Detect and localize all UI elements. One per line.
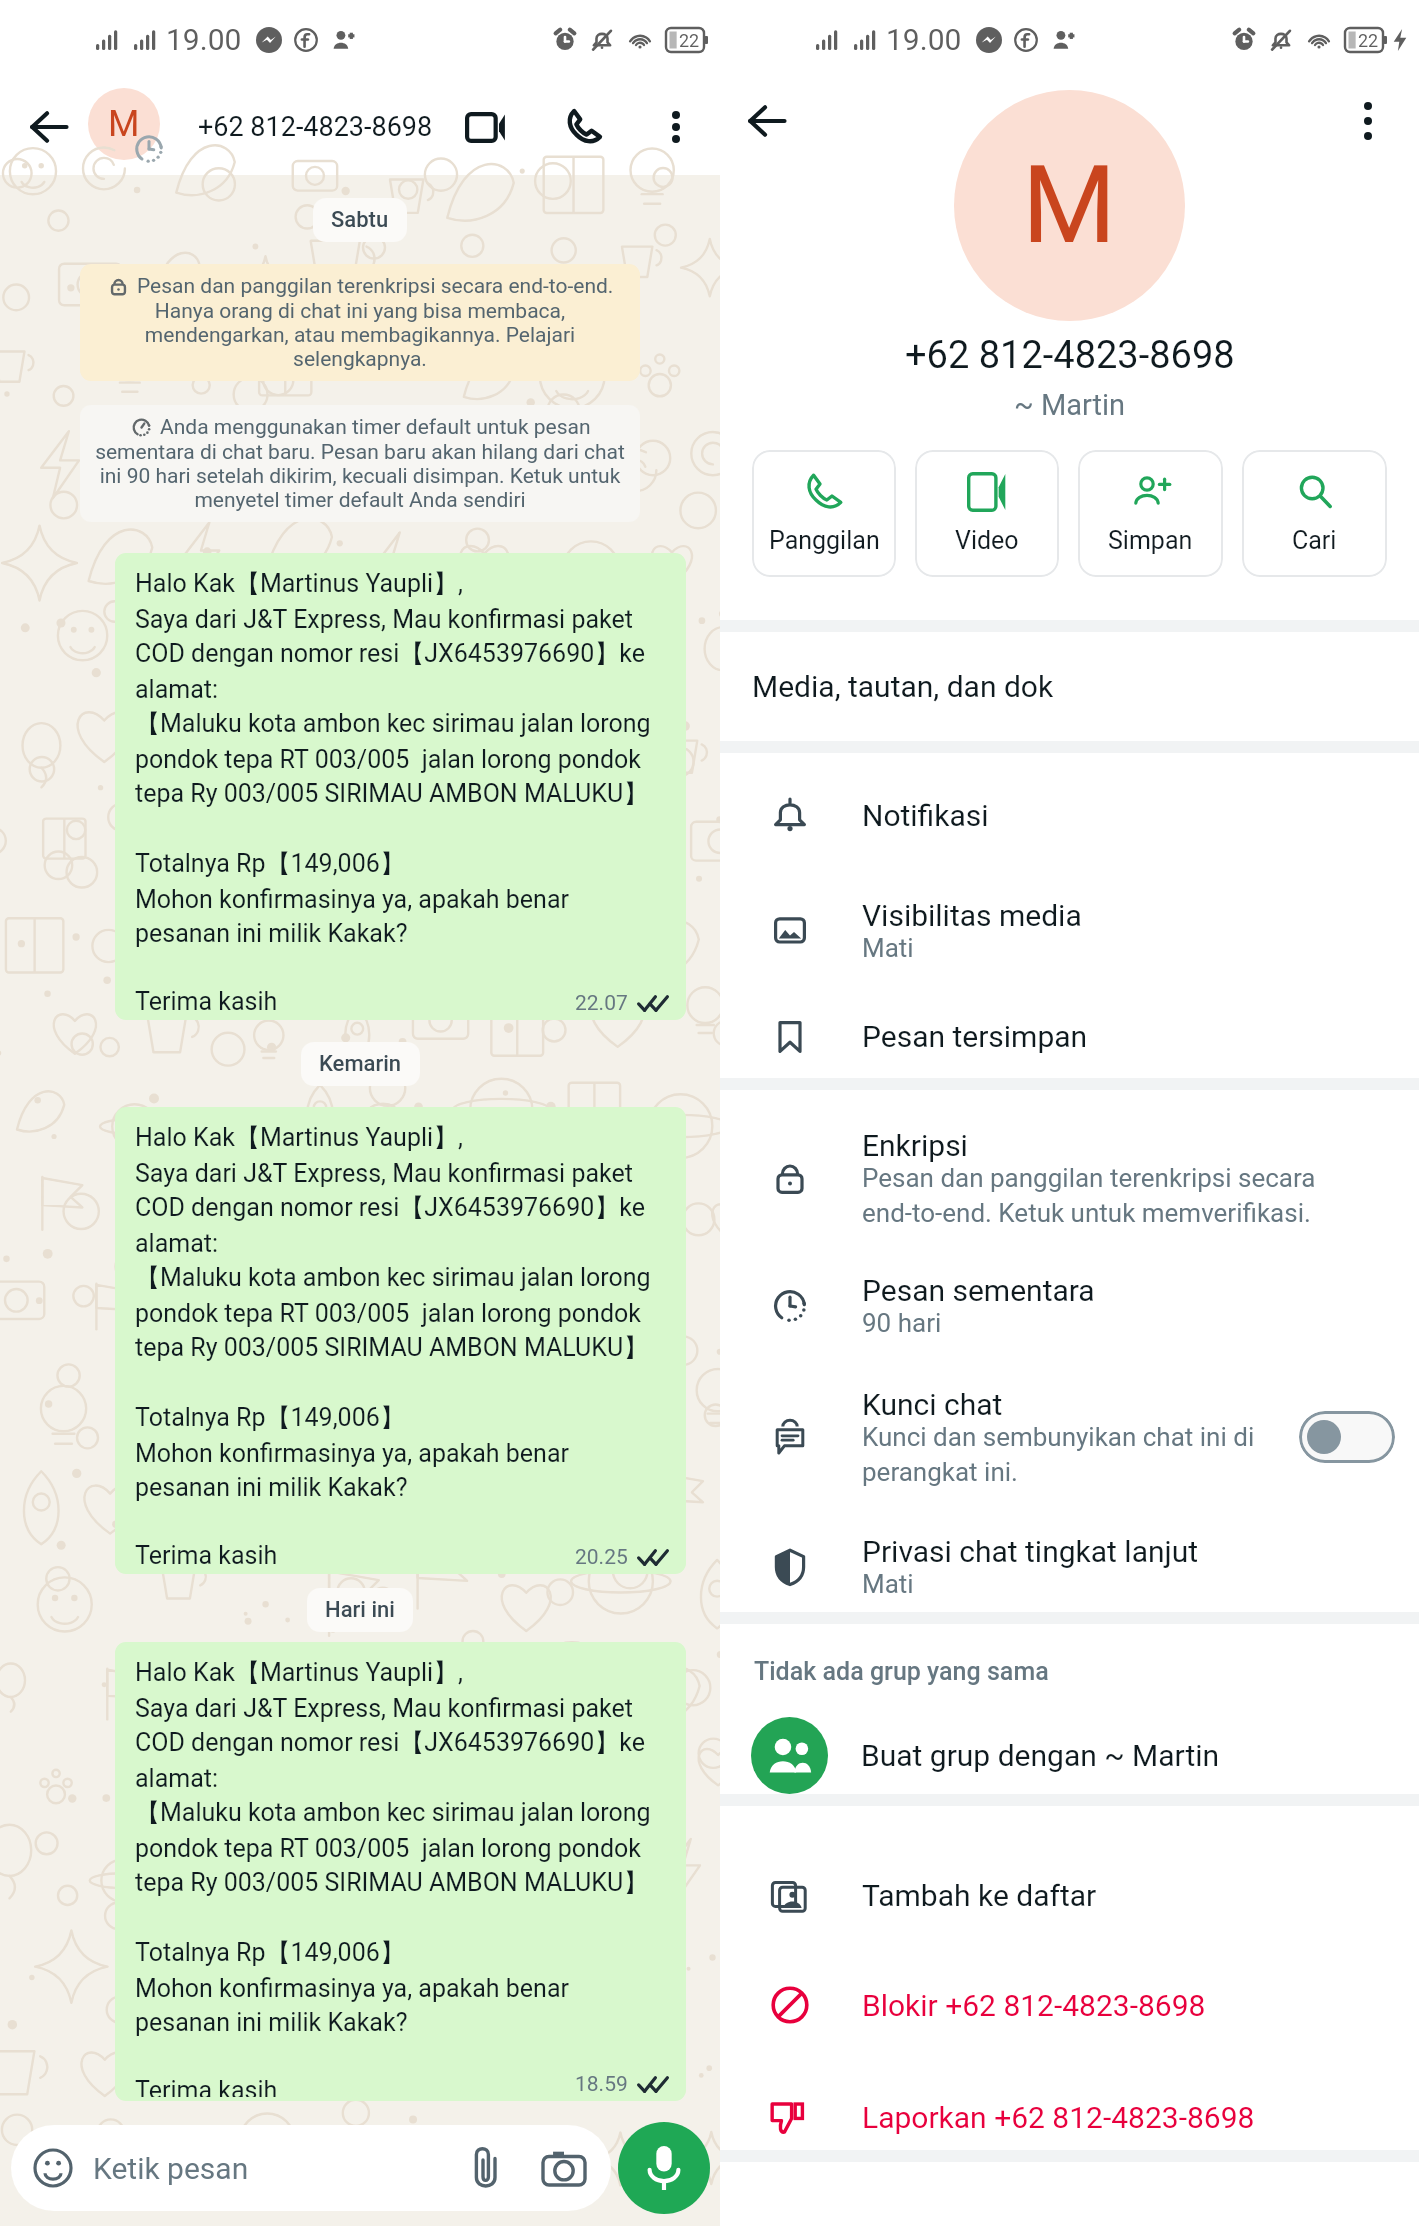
staticText: Blokir +62 812-4823-8698 (862, 1988, 1206, 2023)
button[interactable]: Visibilitas media (720, 865, 1419, 995)
staticText: Ketik pesan (93, 2151, 249, 2186)
staticText: 19.00 (166, 22, 242, 57)
button[interactable]: Record voice message (618, 2122, 710, 2214)
staticText: Anda menggunakan timer default untuk pes… (160, 415, 591, 440)
staticText: +62 812-4823-8698 (905, 333, 1235, 378)
staticText: Pesan dan panggilan terenkripsi secara e… (862, 1163, 1316, 1228)
button[interactable]: Pesan sementara (720, 1236, 1419, 1349)
staticText: ~ Martin (1014, 388, 1126, 422)
button[interactable]: Buat grup dengan ~ Martin (720, 1686, 1419, 1794)
button[interactable]: Anda menggunakan timer default untuk pes… (80, 405, 640, 522)
button[interactable]: More options (1337, 90, 1399, 152)
button[interactable]: Video call (448, 89, 524, 165)
button[interactable]: Pesan tersimpan (720, 995, 1419, 1078)
button[interactable]: Video (915, 450, 1059, 577)
staticText: Pesan sementara (862, 1273, 1095, 1308)
staticText: Pesan dan panggilan terenkripsi secara e… (137, 274, 614, 299)
staticText: Kunci dan sembunyikan chat ini di perang… (862, 1422, 1255, 1487)
staticText: Tambah ke daftar (862, 1878, 1097, 1913)
button[interactable]: Hari ini (307, 1588, 413, 1632)
staticText: M (108, 103, 140, 145)
staticText: Video (955, 526, 1019, 555)
staticText: 19.00 (886, 22, 962, 57)
button[interactable]: Laporkan +62 812-4823-8698 (720, 2025, 1419, 2135)
button[interactable]: Back (18, 96, 80, 158)
button[interactable]: Halo Kak【Martinus Yaupli】, Saya dari J&T… (115, 1107, 686, 1574)
staticText: Enkripsi (862, 1128, 968, 1163)
staticText: M (1022, 142, 1117, 269)
staticText: Media, tautan, dan dok (752, 669, 1054, 704)
staticText: Cari (1292, 526, 1337, 555)
staticText: Privasi chat tingkat lanjut (862, 1534, 1199, 1569)
button[interactable]: Halo Kak【Martinus Yaupli】, Saya dari J&T… (115, 553, 686, 1020)
button[interactable]: Voice call (546, 89, 622, 165)
staticText: Kunci chat (862, 1387, 1003, 1422)
button[interactable]: Cari (1242, 450, 1387, 577)
staticText: Hari ini (325, 1597, 395, 1623)
staticText: 22 (679, 30, 700, 51)
staticText: Tidak ada grup yang sama (754, 1657, 1049, 1686)
staticText: Buat grup dengan ~ Martin (861, 1738, 1220, 1773)
button[interactable]: Back (736, 90, 798, 152)
staticText: +62 812-4823-8698 (198, 111, 433, 143)
button[interactable]: Pesan dan panggilan terenkripsi secara e… (80, 264, 640, 381)
staticText: 22 (1358, 30, 1379, 51)
staticText: sementara di chat baru. Pesan baru akan … (94, 440, 626, 512)
staticText: 90 hari (862, 1308, 942, 1338)
button[interactable]: Blokir +62 812-4823-8698 (720, 1919, 1419, 2025)
button[interactable]: Panggilan (752, 450, 896, 577)
button[interactable]: Halo Kak【Martinus Yaupli】, Saya dari J&T… (115, 1642, 686, 2101)
button[interactable]: Tambah ke daftar (720, 1806, 1419, 1919)
staticText: 18.59 (575, 2072, 628, 2097)
button[interactable]: Privasi chat tingkat lanjut (720, 1495, 1419, 1612)
staticText: Mati (862, 1569, 914, 1599)
button[interactable]: Media, tautan, dan dok (720, 632, 1419, 741)
button[interactable]: More options (644, 95, 707, 159)
staticText: 22.07 (575, 991, 628, 1016)
staticText: Laporkan +62 812-4823-8698 (862, 2100, 1255, 2135)
button[interactable]: Kemarin (301, 1042, 420, 1086)
button[interactable]: Sabtu (313, 198, 407, 242)
staticText: Halo Kak【Martinus Yaupli】, Saya dari J&T… (135, 568, 651, 1016)
staticText: Simpan (1108, 526, 1193, 555)
button[interactable]: Notifikasi (720, 753, 1419, 865)
staticText: Hanya orang di chat ini yang bisa membac… (94, 299, 626, 371)
button[interactable]: Ketik pesan (11, 2125, 611, 2211)
button[interactable]: Simpan (1078, 450, 1223, 577)
staticText: Mati (862, 933, 914, 963)
staticText: Notifikasi (862, 798, 989, 833)
staticText: 20.25 (575, 1545, 628, 1570)
staticText: Pesan tersimpan (862, 1019, 1088, 1054)
button[interactable]: Kunci chat (720, 1349, 1419, 1495)
staticText: Halo Kak【Martinus Yaupli】, Saya dari J&T… (135, 1657, 651, 2097)
staticText: Panggilan (769, 526, 880, 555)
staticText: Kemarin (319, 1051, 402, 1077)
staticText: Visibilitas media (862, 898, 1082, 933)
button[interactable]: Enkripsi (720, 1090, 1419, 1236)
staticText: Halo Kak【Martinus Yaupli】, Saya dari J&T… (135, 1122, 651, 1570)
staticText: Sabtu (331, 207, 389, 233)
button[interactable]: Kunci chat toggle (1299, 1411, 1395, 1463)
